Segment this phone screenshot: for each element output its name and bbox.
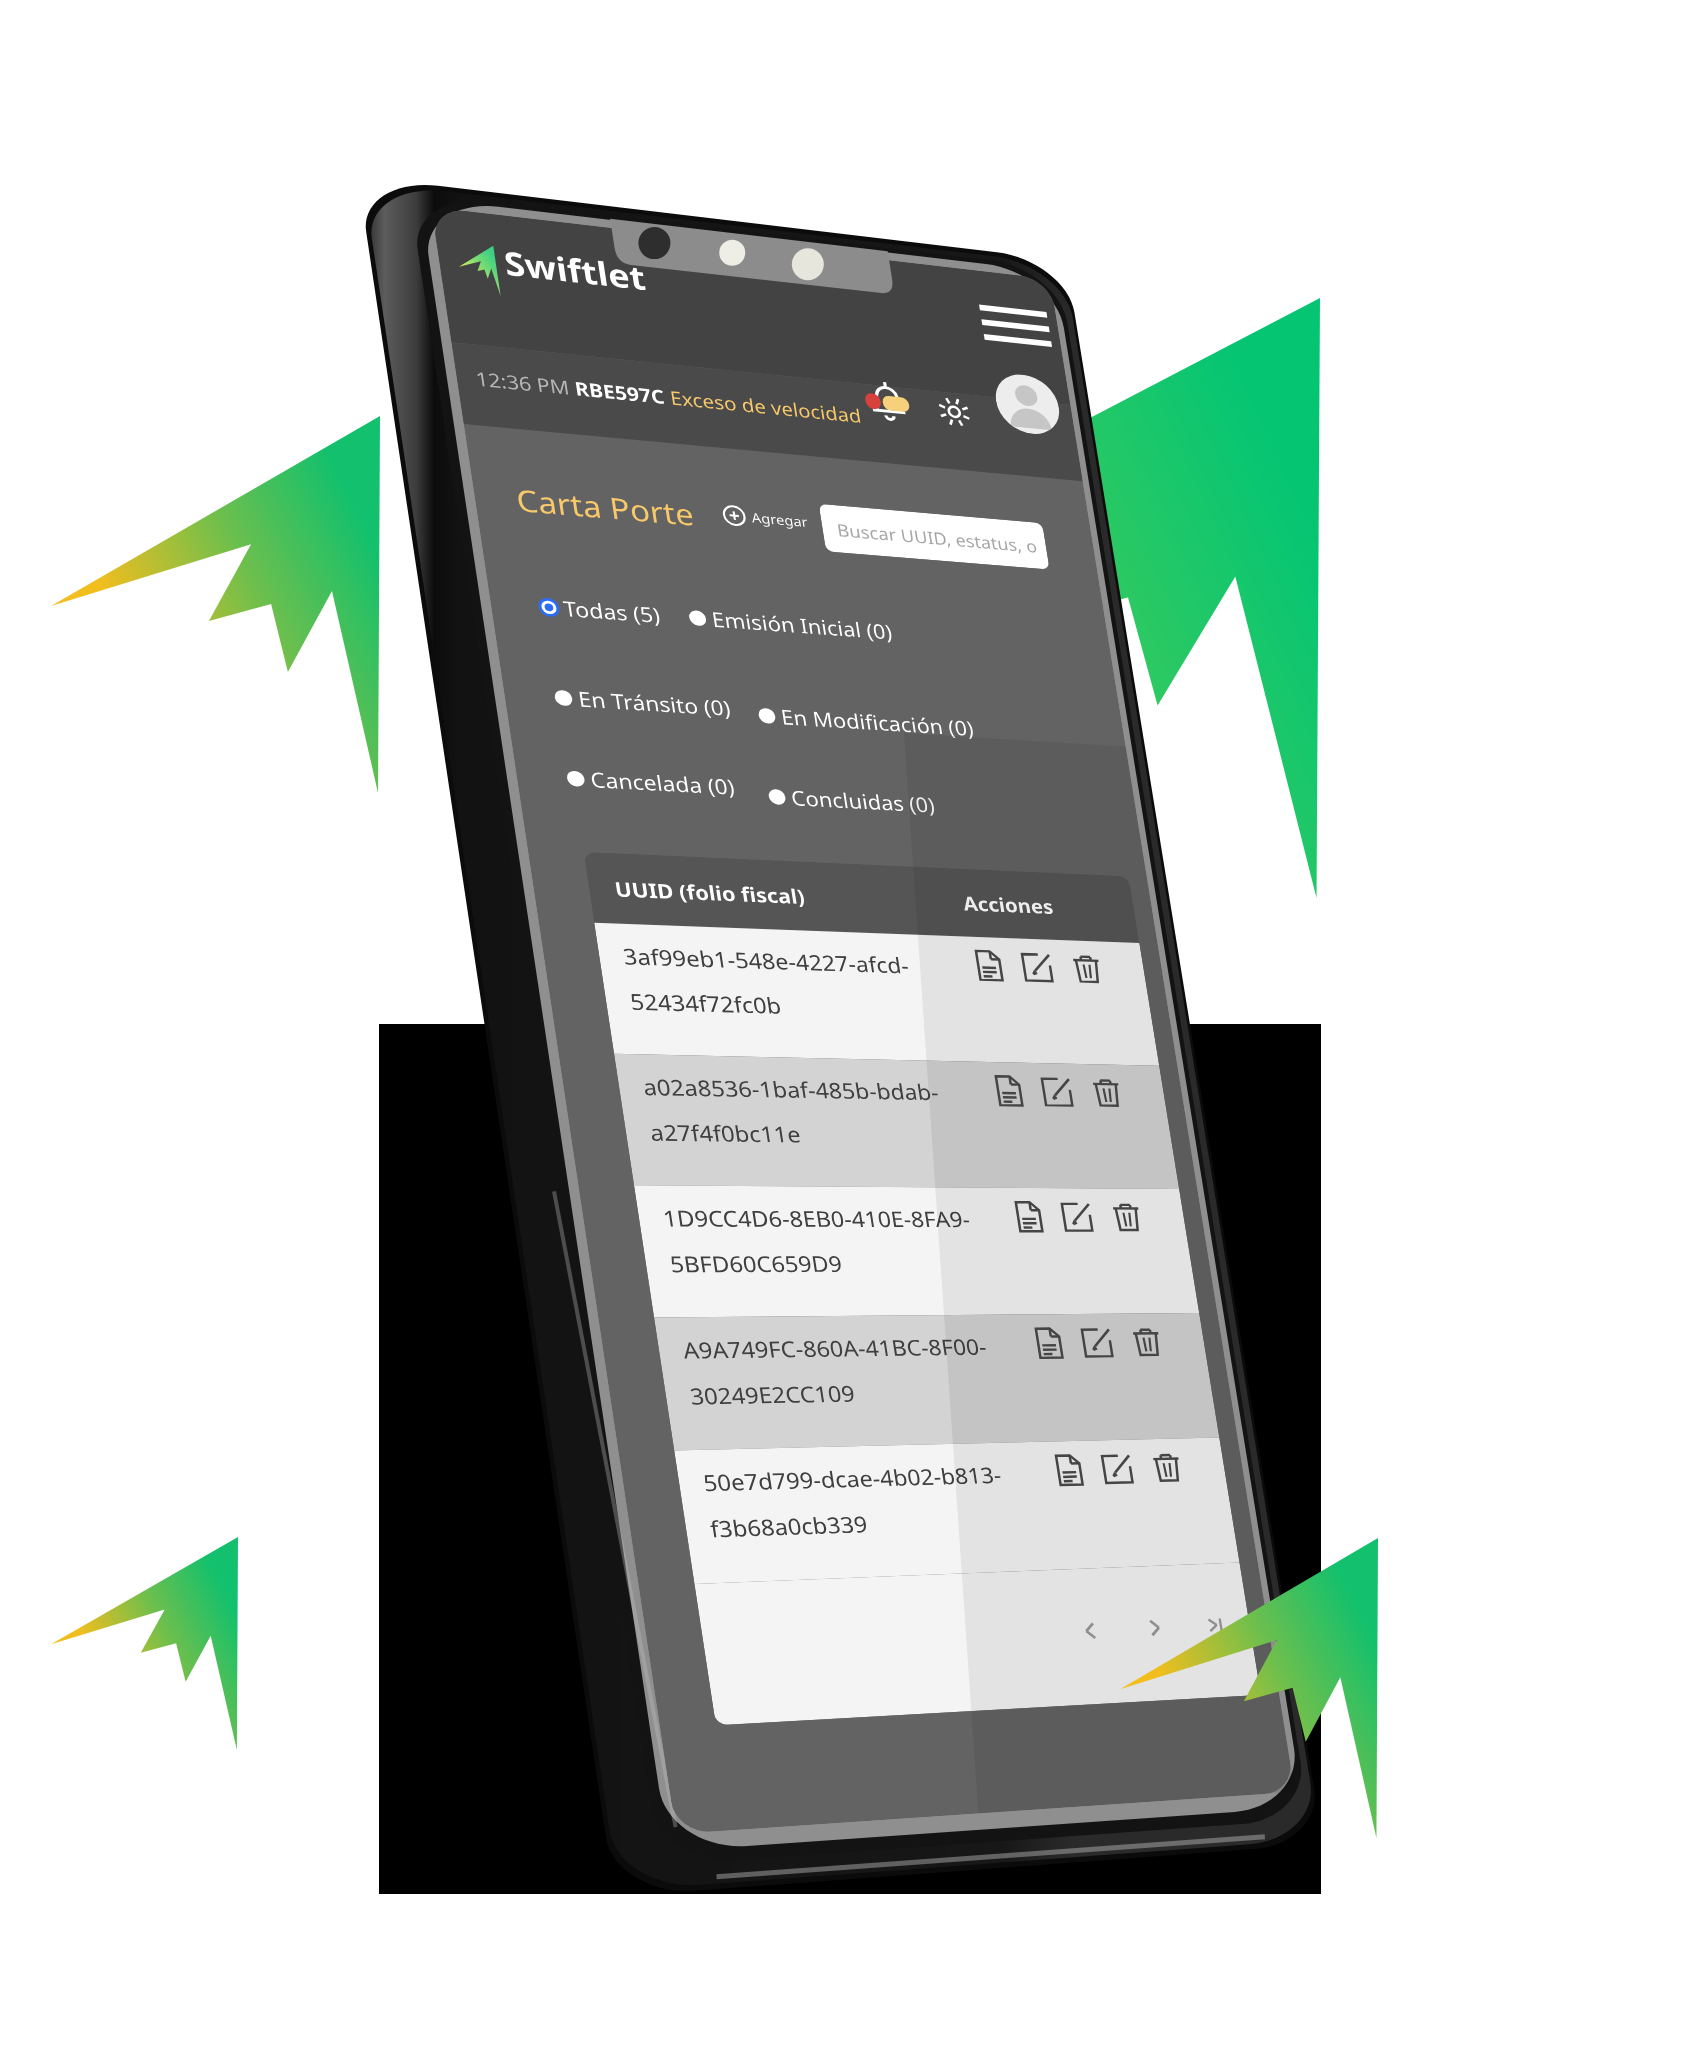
button[interactable]: 50e7d799-dcae-4b02-b813- f3b68a0cb339 — [64, 1587, 736, 1754]
button[interactable]: Edit — [574, 1601, 622, 1649]
staticText: A9A749FC-860A-41BC-8F00- 30249E2CC109 — [92, 1442, 457, 1538]
button[interactable]: View document — [512, 933, 560, 981]
button[interactable]: Delete — [638, 1434, 686, 1482]
staticText: Acciones — [516, 856, 631, 891]
staticText: Todas (5) — [84, 494, 197, 531]
staticText: En Tránsito (0) — [85, 611, 265, 648]
button[interactable]: Edit — [574, 933, 622, 981]
staticText: Emisión Inicial (0) — [259, 494, 480, 531]
button[interactable]: Profile — [662, 140, 744, 222]
button[interactable]: En Tránsito (0) — [56, 611, 265, 648]
staticText: Buscar UUID, estatus, o — [431, 363, 685, 394]
staticText: Agregar — [327, 360, 396, 385]
staticText: 3af99eb1-548e-4227-afcd- 52434f72fc0b — [92, 941, 435, 1037]
staticText: Exceso de velocidad — [250, 203, 484, 237]
button[interactable]: Delete — [638, 933, 686, 981]
button[interactable]: En Modificación (0) — [296, 618, 565, 655]
button[interactable]: 3af99eb1-548e-4227-afcd- 52434f72fc0b — [64, 919, 736, 1086]
button[interactable]: Emisión Inicial (0) — [230, 494, 480, 531]
button[interactable]: a02a8536-1baf-485b-bdab- a27f4f0bc11e — [64, 1086, 736, 1253]
button[interactable]: Delete — [638, 1267, 686, 1315]
button[interactable]: Brightness — [581, 178, 629, 226]
button[interactable]: View document — [512, 1100, 560, 1148]
button[interactable]: Agregar — [292, 358, 396, 386]
staticText: 50e7d799-dcae-4b02-b813- f3b68a0cb339 — [92, 1609, 450, 1705]
button[interactable]: Buscar UUID, estatus, o — [431, 346, 697, 410]
button[interactable]: Last page — [676, 1819, 708, 1851]
button[interactable]: 1D9CC4D6-8EB0-410E-8FA9- 5BFD60C659D9 — [64, 1253, 736, 1420]
button[interactable]: Todas (5) — [55, 494, 197, 531]
button[interactable]: Delete — [638, 1601, 686, 1649]
staticText: a02a8536-1baf-485b-bdab- a27f4f0bc11e — [92, 1108, 447, 1204]
button[interactable]: View document — [512, 1267, 560, 1315]
button[interactable]: View document — [512, 1434, 560, 1482]
staticText: 1D9CC4D6-8EB0-410E-8FA9- 5BFD60C659D9 — [92, 1275, 462, 1371]
button[interactable]: Delete — [638, 1100, 686, 1148]
button[interactable]: A9A749FC-860A-41BC-8F00- 30249E2CC109 — [64, 1420, 736, 1587]
button[interactable]: Edit — [574, 1267, 622, 1315]
button[interactable]: Next page — [594, 1816, 632, 1854]
staticText: Concluidas (0) — [322, 725, 500, 762]
button[interactable]: Concluidas (0) — [293, 725, 500, 762]
button[interactable]: Edit — [574, 1434, 622, 1482]
staticText: En Modificación (0) — [325, 618, 565, 655]
button[interactable]: Notifications — [489, 168, 553, 230]
